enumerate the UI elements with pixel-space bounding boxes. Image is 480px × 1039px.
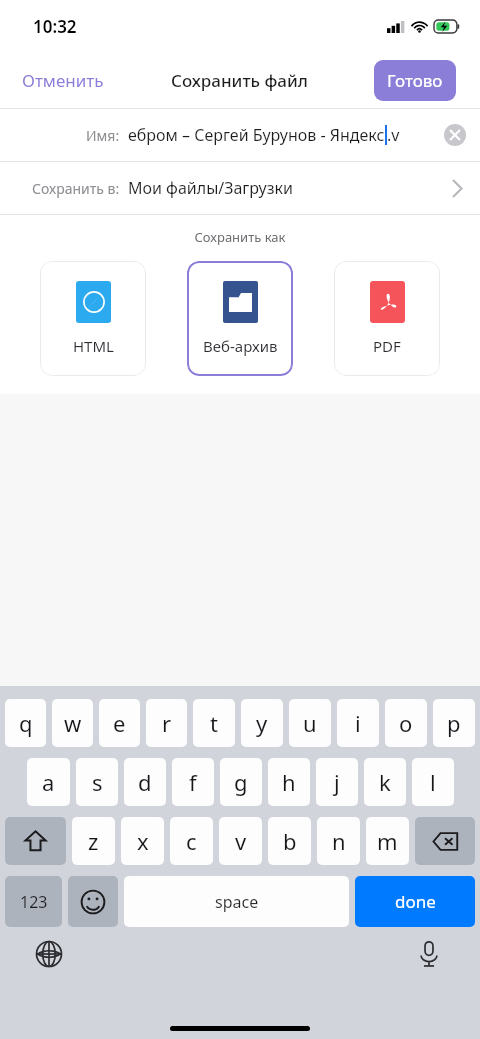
staticText: l xyxy=(430,767,436,797)
button[interactable]: v xyxy=(219,817,262,865)
button[interactable]: f xyxy=(172,758,214,806)
button[interactable]: Диктовка xyxy=(413,938,445,970)
staticText: Имя: xyxy=(86,126,120,145)
button[interactable]: x xyxy=(121,817,164,865)
button[interactable]: Смена языка xyxy=(33,938,65,970)
button[interactable]: e xyxy=(99,699,140,747)
staticText: x xyxy=(137,826,149,856)
button[interactable]: o xyxy=(385,699,427,747)
button[interactable]: Shift xyxy=(5,817,66,865)
button[interactable]: m xyxy=(366,817,409,865)
button[interactable]: Очистить xyxy=(444,124,466,146)
button[interactable]: 123 xyxy=(5,876,62,927)
button[interactable]: j xyxy=(316,758,358,806)
button[interactable]: u xyxy=(289,699,331,747)
button[interactable]: p xyxy=(433,699,475,747)
staticText: w xyxy=(64,708,82,738)
staticText: j xyxy=(334,767,340,797)
staticText: a xyxy=(42,767,55,797)
staticText: y xyxy=(256,708,268,738)
button[interactable]: Отменить xyxy=(0,59,126,102)
button[interactable]: c xyxy=(170,817,213,865)
staticText: g xyxy=(234,767,248,797)
staticText: d xyxy=(138,767,152,797)
staticText: k xyxy=(379,767,391,797)
staticText: q xyxy=(19,708,33,738)
staticText: m xyxy=(377,826,398,856)
button[interactable]: b xyxy=(268,817,311,865)
staticText: u xyxy=(303,708,317,738)
staticText: Сохранить в: xyxy=(32,179,120,198)
button[interactable]: y xyxy=(241,699,283,747)
staticText: p xyxy=(447,708,461,738)
button[interactable]: HTML xyxy=(40,261,146,376)
button[interactable]: PDF xyxy=(334,261,440,376)
staticText: e xyxy=(113,708,126,738)
button[interactable]: z xyxy=(72,817,115,865)
button[interactable]: Готово xyxy=(374,60,456,101)
staticText: o xyxy=(399,708,413,738)
staticText: t xyxy=(210,708,218,738)
staticText: done xyxy=(395,890,436,913)
staticText: n xyxy=(332,826,346,856)
staticText: 123 xyxy=(20,891,48,913)
button[interactable]: Backspace xyxy=(415,817,475,865)
button[interactable]: Веб-архив xyxy=(187,261,293,376)
staticText: z xyxy=(88,826,99,856)
staticText: h xyxy=(282,767,296,797)
staticText: b xyxy=(283,826,297,856)
staticText: Сохранить как xyxy=(0,228,480,246)
staticText: ебром – Сергей Бурунов - Яндекс xyxy=(128,124,385,146)
button[interactable]: i xyxy=(337,699,379,747)
button[interactable]: Имя: xyxy=(0,109,480,161)
button[interactable]: k xyxy=(364,758,406,806)
staticText: Сохранить файл xyxy=(171,69,309,92)
staticText: Готово xyxy=(387,69,443,92)
staticText: space xyxy=(215,891,259,913)
staticText: c xyxy=(186,826,197,856)
button[interactable]: h xyxy=(268,758,310,806)
staticText: Веб-архив xyxy=(203,336,278,356)
staticText: f xyxy=(189,767,197,797)
button[interactable]: d xyxy=(124,758,166,806)
staticText: s xyxy=(92,767,103,797)
button[interactable]: n xyxy=(317,817,360,865)
staticText: Отменить xyxy=(22,69,104,92)
button[interactable]: s xyxy=(76,758,118,806)
button[interactable]: q xyxy=(5,699,46,747)
staticText: i xyxy=(355,708,361,738)
staticText: Мои файлы/Загрузки xyxy=(128,177,452,199)
button[interactable]: a xyxy=(27,758,70,806)
staticText: r xyxy=(162,708,172,738)
staticText: .v xyxy=(387,124,400,146)
staticText: HTML xyxy=(73,336,114,356)
button[interactable]: r xyxy=(146,699,187,747)
button[interactable]: w xyxy=(52,699,93,747)
staticText: 10:32 xyxy=(33,15,77,38)
button[interactable]: t xyxy=(193,699,235,747)
button[interactable]: Сохранить в: xyxy=(0,162,480,214)
staticText: v xyxy=(235,826,247,856)
staticText: PDF xyxy=(373,336,401,356)
button[interactable]: g xyxy=(220,758,262,806)
button[interactable]: l xyxy=(412,758,454,806)
button[interactable]: done xyxy=(355,876,475,927)
button[interactable]: Emoji xyxy=(68,876,118,927)
button[interactable]: space xyxy=(124,876,349,927)
